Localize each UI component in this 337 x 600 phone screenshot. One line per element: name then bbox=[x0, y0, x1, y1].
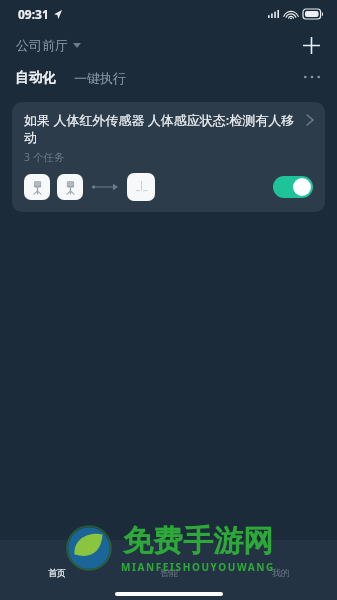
staticText: MIANFEISHOUYOUWANG bbox=[121, 560, 275, 574]
button[interactable]: 智能 bbox=[113, 540, 225, 588]
button[interactable]: Add bbox=[293, 28, 329, 62]
button[interactable]: 如果 人体红外传感器 人体感应状态:检测有人移动 bbox=[12, 102, 325, 212]
staticText: 免费手游网 bbox=[123, 522, 273, 560]
staticText: 智能 bbox=[160, 567, 178, 578]
button[interactable]: 首页 bbox=[0, 540, 113, 588]
staticText: 公司前厅 bbox=[16, 37, 68, 53]
staticText: 一键执行 bbox=[74, 70, 126, 86]
button[interactable]: 我的 bbox=[225, 540, 337, 588]
button[interactable]: Toggle automation bbox=[273, 176, 313, 198]
button[interactable]: 公司前厅 bbox=[12, 33, 85, 57]
button[interactable]: 自动化 bbox=[12, 66, 59, 89]
staticText: 我的 bbox=[272, 567, 290, 578]
staticText: 3 个任务 bbox=[24, 150, 65, 164]
staticText: 自动化 bbox=[15, 69, 56, 86]
button[interactable]: More options bbox=[295, 62, 329, 92]
button[interactable]: 一键执行 bbox=[71, 67, 129, 89]
staticText: 如果 人体红外传感器 人体感应状态:检测有人移动 bbox=[24, 111, 297, 146]
staticText: 09:31 bbox=[18, 6, 49, 22]
staticText: 首页 bbox=[48, 567, 66, 578]
